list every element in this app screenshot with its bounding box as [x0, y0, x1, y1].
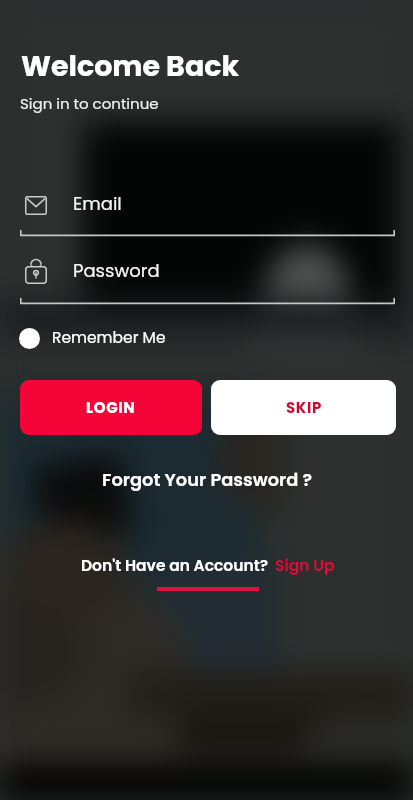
button[interactable]: Sign Up: [275, 555, 335, 577]
staticText: Password: [73, 258, 160, 283]
staticText: LOGIN: [86, 397, 136, 418]
staticText: Don't Have an Account?: [81, 555, 269, 577]
staticText: Welcome Back: [21, 46, 240, 86]
staticText: Remember Me: [52, 327, 166, 349]
button[interactable]: Forgot Your Password ?: [102, 467, 313, 492]
button[interactable]: LOGIN: [20, 380, 202, 435]
staticText: SKIP: [286, 397, 322, 418]
button[interactable]: Remember Me: [17, 322, 177, 354]
staticText: Forgot Your Password ?: [102, 467, 313, 492]
staticText: Sign in to continue: [20, 93, 159, 114]
staticText: Email: [73, 191, 122, 216]
other: Password: [25, 258, 47, 284]
other: Email: [25, 196, 47, 215]
button[interactable]: SKIP: [211, 380, 396, 435]
